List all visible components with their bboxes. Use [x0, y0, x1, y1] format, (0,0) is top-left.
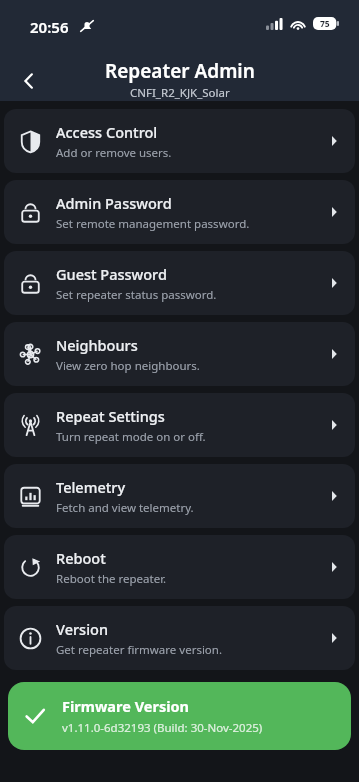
- staticText: Set remote management password.: [56, 216, 250, 232]
- button[interactable]: Firmware Version: [8, 682, 351, 750]
- button[interactable]: Version: [4, 606, 355, 670]
- button[interactable]: Telemetry: [4, 464, 355, 528]
- staticText: Reboot: [56, 548, 106, 568]
- staticText: Guest Password: [56, 264, 167, 284]
- staticText: 75: [320, 18, 330, 30]
- button[interactable]: Guest Password: [4, 251, 355, 315]
- staticText: Neighbours: [56, 335, 138, 355]
- staticText: Firmware Version: [62, 696, 190, 716]
- staticText: Get repeater firmware version.: [56, 642, 223, 658]
- button[interactable]: Repeat Settings: [4, 393, 355, 457]
- staticText: Add or remove users.: [56, 145, 172, 161]
- staticText: View zero hop neighbours.: [56, 358, 200, 374]
- button[interactable]: Admin Password: [4, 180, 355, 244]
- button[interactable]: Access Control: [4, 109, 355, 173]
- staticText: v1.11.0-6d32193 (Build: 30-Nov-2025): [62, 720, 263, 736]
- staticText: Telemetry: [56, 477, 126, 497]
- staticText: Fetch and view telemetry.: [56, 500, 194, 516]
- button[interactable]: Reboot: [4, 535, 355, 599]
- staticText: Access Control: [56, 122, 158, 142]
- staticText: 20:56: [30, 17, 69, 37]
- staticText: Set repeater status password.: [56, 287, 217, 303]
- staticText: Version: [56, 619, 108, 639]
- staticText: CNFI_R2_KJK_Solar: [130, 85, 230, 101]
- staticText: Reboot the repeater.: [56, 571, 167, 587]
- staticText: Admin Password: [56, 193, 172, 213]
- staticText: Repeater Admin: [105, 58, 255, 84]
- button[interactable]: Back: [8, 60, 50, 101]
- staticText: Turn repeat mode on or off.: [56, 429, 206, 445]
- button[interactable]: Neighbours: [4, 322, 355, 386]
- staticText: Repeat Settings: [56, 406, 165, 426]
